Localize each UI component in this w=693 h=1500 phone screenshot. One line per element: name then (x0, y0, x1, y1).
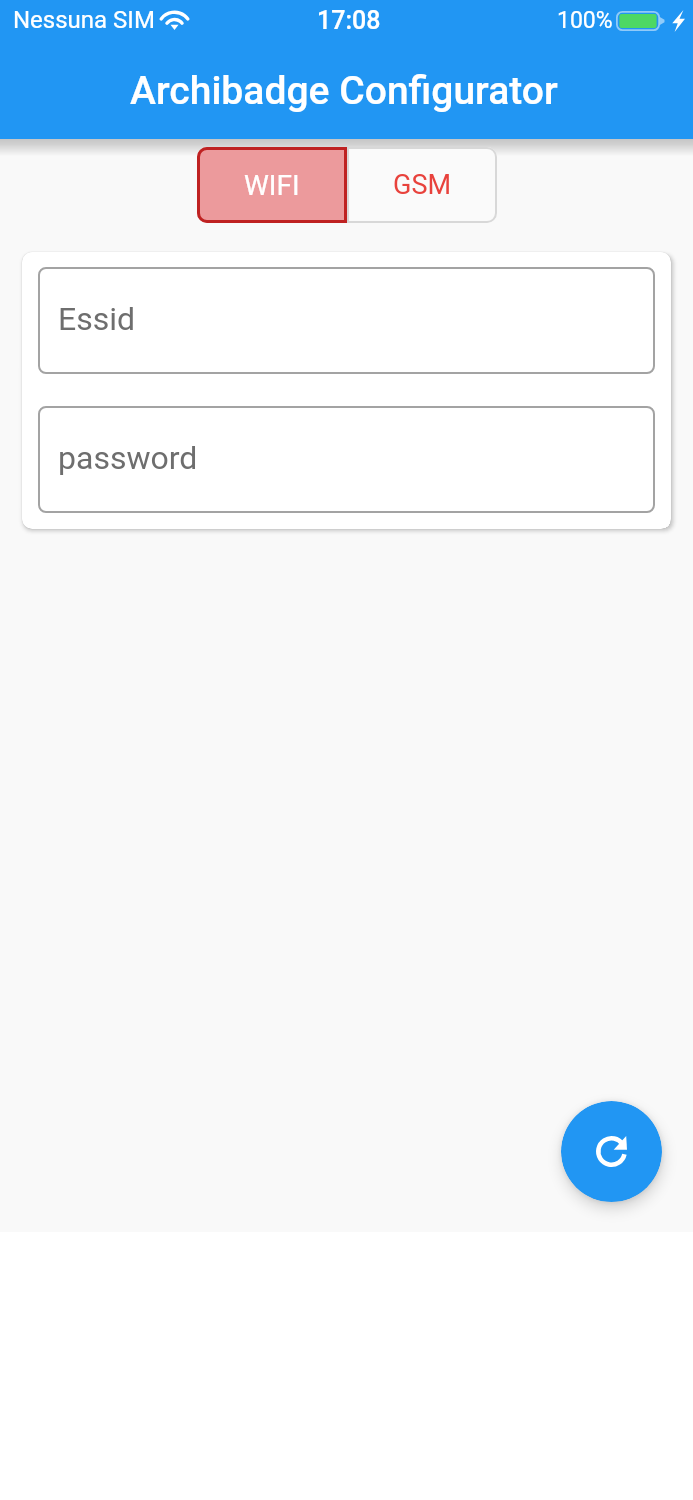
staticText: Archibadge Configurator (130, 68, 558, 114)
button[interactable]: password (38, 406, 655, 513)
staticText: 17:08 (317, 6, 381, 35)
staticText: GSM (393, 169, 451, 201)
staticText: password (58, 439, 198, 477)
staticText: 100% (557, 7, 613, 34)
staticText: Essid (58, 300, 136, 338)
button[interactable]: WIFI (197, 147, 347, 223)
button[interactable]: Essid (38, 267, 655, 374)
button[interactable]: GSM (347, 147, 497, 223)
staticText: WIFI (244, 169, 300, 202)
button[interactable]: Refresh (561, 1101, 662, 1202)
staticText: Nessuna SIM (13, 6, 155, 34)
